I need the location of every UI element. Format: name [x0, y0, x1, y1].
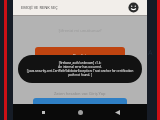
staticText: A: [148, 48, 153, 58]
button[interactable]: Kaydet: [35, 47, 125, 64]
staticText: EMOJİ VE RENK SEÇ: [21, 5, 58, 10]
staticText: [firebase_auth/unknown] c1.k: An interna…: [26, 61, 134, 77]
button[interactable]: Recent apps: [36, 105, 50, 119]
staticText: Zaten hesabın var. Giriş Yap: [54, 91, 106, 96]
button[interactable]: Emoji seç: [128, 2, 139, 13]
staticText: Şifrenizi mi unuttunuz?: [58, 28, 102, 33]
button[interactable]: EMOJİ VE RENK SEÇ: [13, 0, 147, 15]
button[interactable]: [firebase_auth/unknown] c1.k: An interna…: [18, 55, 142, 83]
button[interactable]: [33, 98, 127, 104]
button[interactable]: Home: [73, 105, 87, 119]
staticText: Kaydet: [73, 53, 87, 58]
button[interactable]: Back: [110, 105, 124, 119]
